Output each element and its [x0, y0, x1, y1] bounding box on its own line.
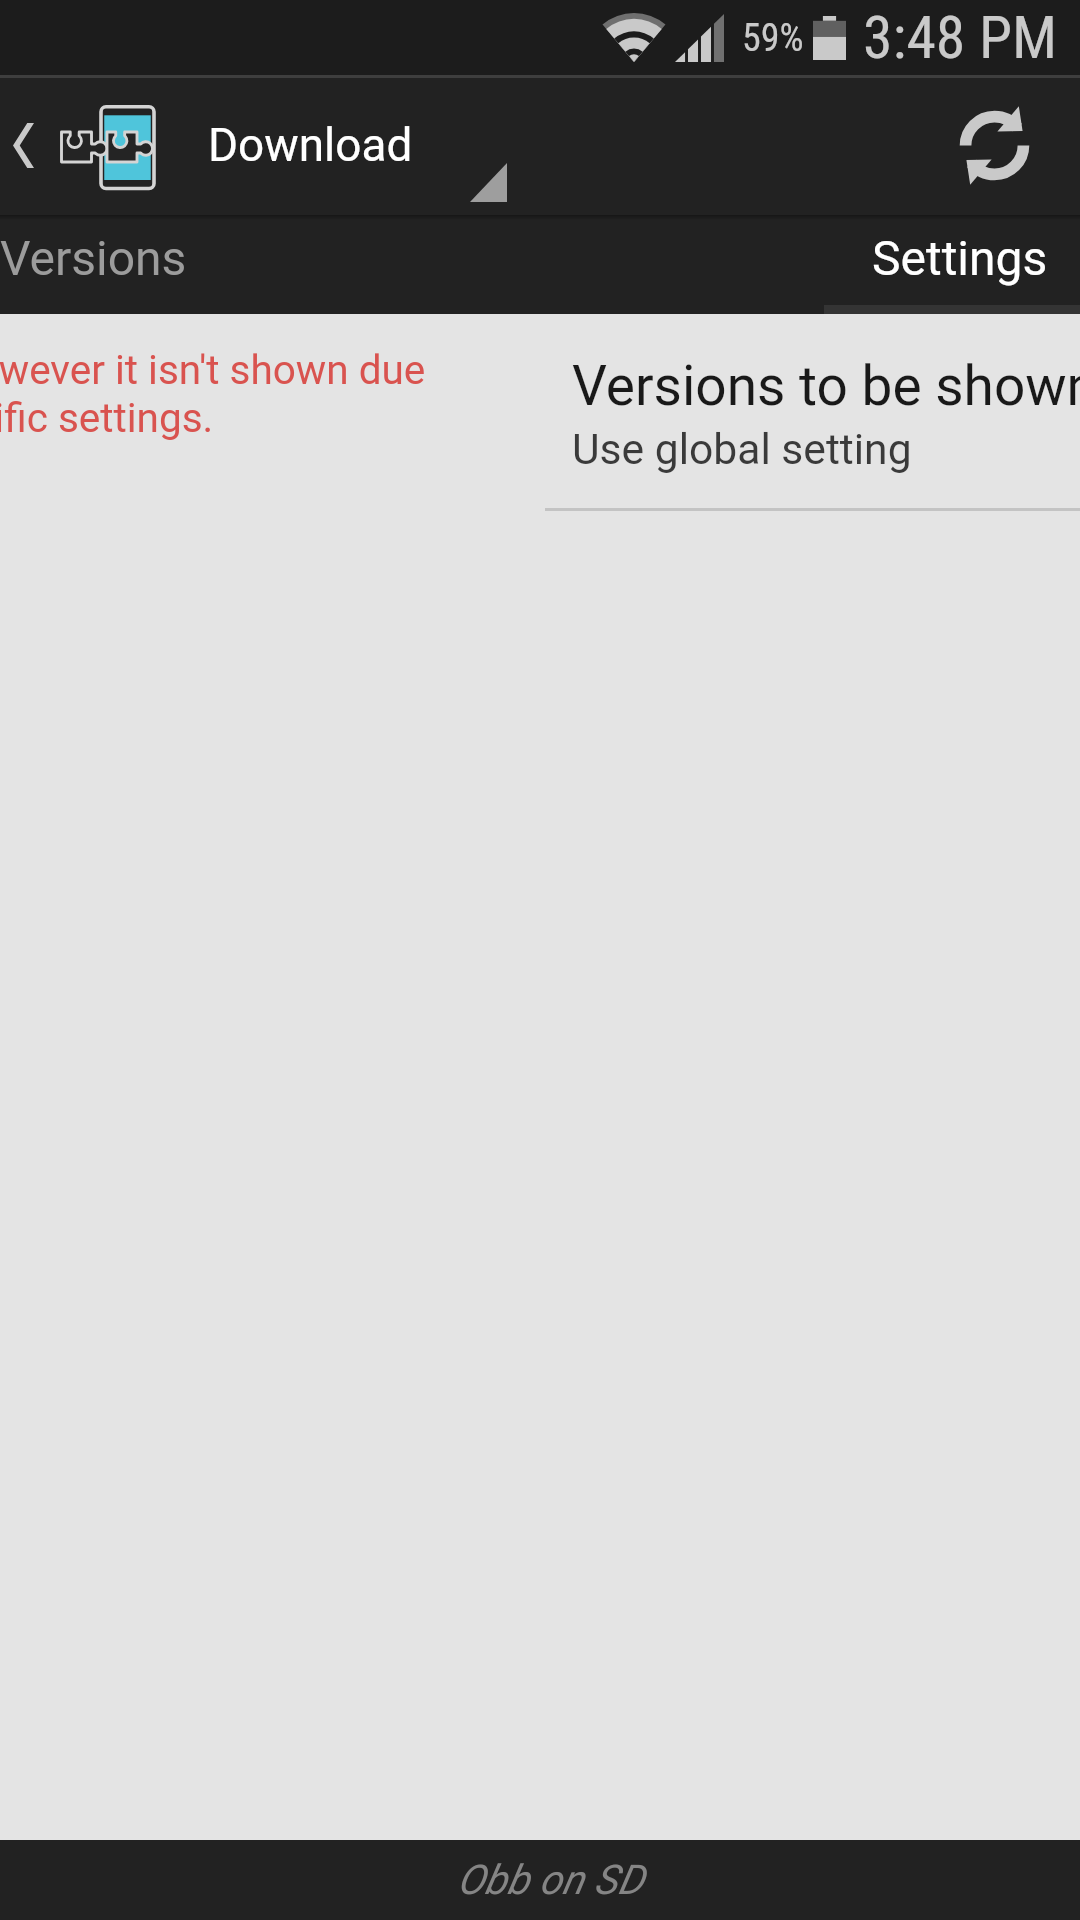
staticText: Versions: [0, 230, 187, 286]
staticText: Settings: [872, 230, 1048, 286]
staticText: to your version-specific settings.: [0, 394, 214, 441]
button[interactable]: Settings: [872, 230, 1048, 286]
button[interactable]: Refresh: [927, 75, 1080, 215]
staticText: 3:48 PM: [863, 3, 1058, 73]
button[interactable]: Versions to be shown: [540, 314, 1080, 508]
button[interactable]: Navigate up: [0, 75, 155, 215]
staticText: Use global setting: [572, 424, 912, 474]
staticText: Obb on SD: [457, 1856, 644, 1904]
staticText: Download: [208, 118, 413, 172]
staticText: 59%: [742, 16, 804, 61]
staticText: A new version is available, however it i…: [0, 346, 426, 393]
button[interactable]: Versions: [0, 230, 187, 286]
staticText: Versions to be shown: [572, 354, 1080, 418]
